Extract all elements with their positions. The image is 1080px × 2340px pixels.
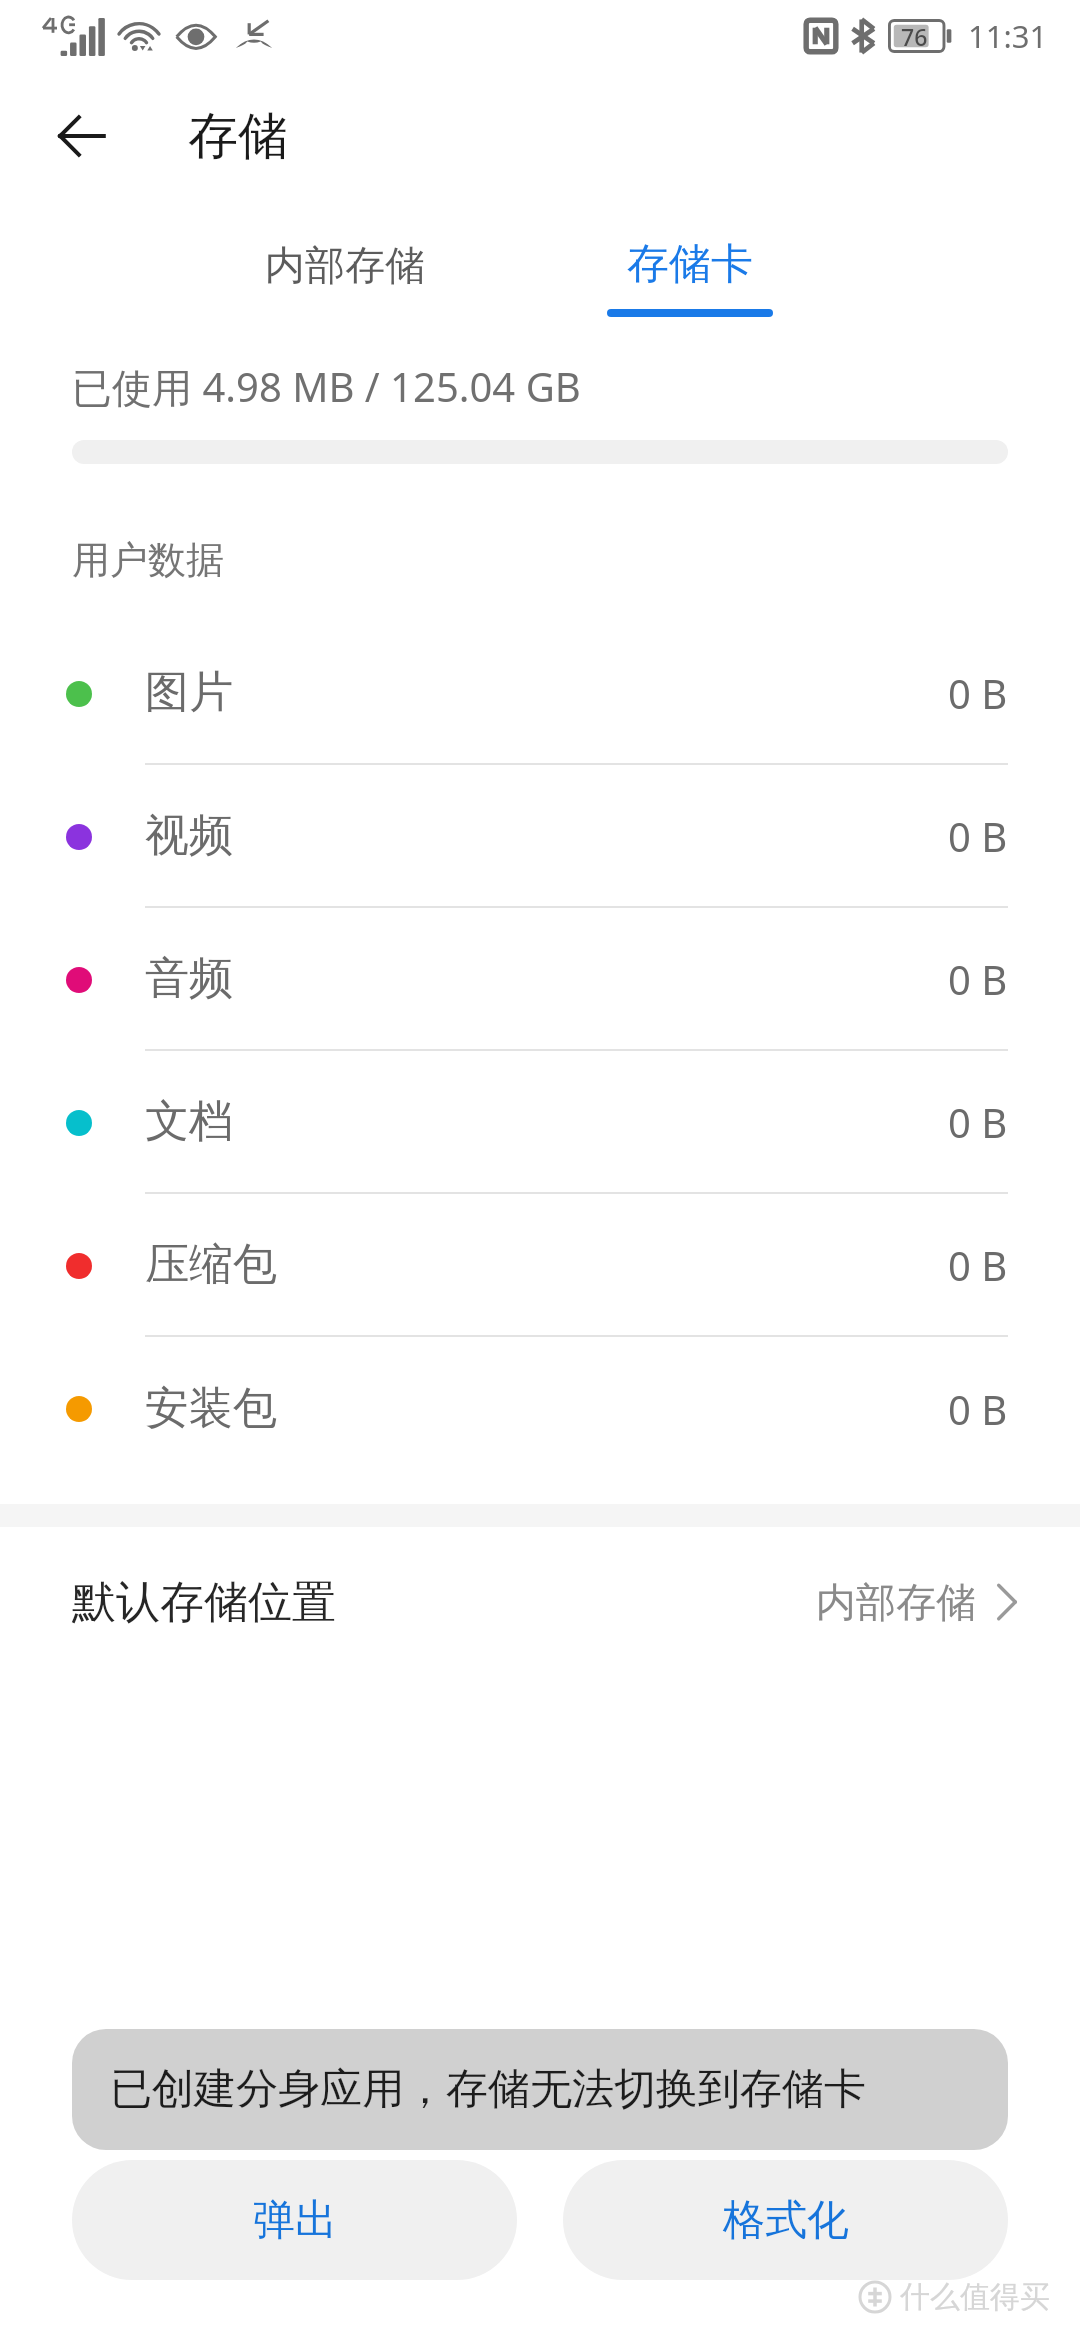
staticText: 默认存储位置: [72, 1575, 336, 1630]
staticText: 音频: [145, 951, 233, 1006]
button[interactable]: 图片: [0, 622, 1080, 765]
staticText: 已使用 4.98 MB / 125.04 GB: [72, 359, 581, 414]
staticText: 图片: [145, 665, 233, 720]
button[interactable]: 格式化: [563, 2160, 1008, 2280]
staticText: 用户数据: [72, 536, 224, 584]
button[interactable]: 视频: [0, 765, 1080, 908]
staticText: 已创建分身应用，存储无法切换到存储卡: [110, 2063, 866, 2116]
staticText: 什么值得买: [900, 2278, 1050, 2316]
staticText: 格式化: [723, 2194, 849, 2247]
staticText: 11:31: [968, 15, 1048, 57]
staticText: 内部存储: [265, 240, 425, 290]
button[interactable]: 内部存储: [230, 200, 460, 335]
staticText: 0 B: [948, 1382, 1008, 1436]
button[interactable]: 文档: [0, 1051, 1080, 1194]
button[interactable]: 安装包: [0, 1337, 1080, 1480]
staticText: 0 B: [948, 1095, 1008, 1149]
button[interactable]: 弹出: [72, 2160, 517, 2280]
staticText: 0 B: [948, 952, 1008, 1006]
staticText: 文档: [145, 1094, 233, 1149]
staticText: 0 B: [948, 1238, 1008, 1292]
button[interactable]: 返回: [40, 94, 124, 178]
staticText: 存储: [188, 105, 288, 168]
staticText: 0 B: [948, 666, 1008, 720]
staticText: 76: [901, 21, 928, 52]
button[interactable]: 默认存储位置: [0, 1527, 1080, 1677]
button[interactable]: 音频: [0, 908, 1080, 1051]
staticText: 内部存储: [816, 1577, 976, 1627]
staticText: 0 B: [948, 809, 1008, 863]
button[interactable]: 压缩包: [0, 1194, 1080, 1337]
staticText: 弹出: [253, 2194, 337, 2247]
staticText: 安装包: [145, 1381, 277, 1436]
staticText: 视频: [145, 808, 233, 863]
staticText: 存储卡: [627, 238, 753, 291]
staticText: 压缩包: [145, 1237, 277, 1292]
button[interactable]: 存储卡: [570, 200, 810, 335]
